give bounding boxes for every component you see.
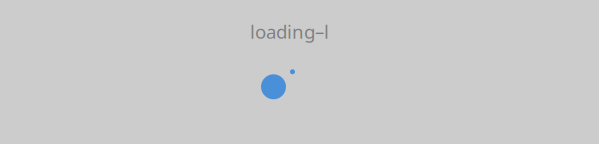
staticText: loading–l — [250, 19, 329, 44]
